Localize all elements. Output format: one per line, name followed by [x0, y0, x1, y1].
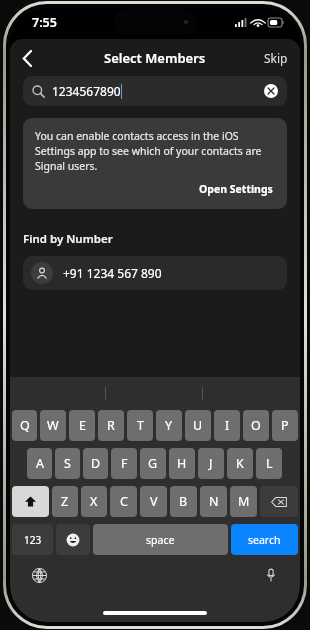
staticText: R: [107, 417, 115, 434]
staticText: Find by Number: [23, 231, 113, 247]
button[interactable]: J: [198, 448, 224, 479]
staticText: S: [64, 455, 71, 472]
button[interactable]: O: [243, 410, 269, 441]
staticText: E: [79, 417, 86, 434]
staticText: T: [137, 417, 144, 434]
button[interactable]: space: [93, 524, 228, 555]
button[interactable]: F: [111, 448, 137, 479]
button[interactable]: 123: [12, 524, 53, 555]
button[interactable]: Emoji: [56, 524, 90, 555]
staticText: M: [238, 493, 250, 510]
button[interactable]: search: [231, 524, 298, 555]
button[interactable]: U: [185, 410, 211, 441]
button[interactable]: D: [83, 448, 108, 479]
button[interactable]: K: [227, 448, 253, 479]
button[interactable]: C: [110, 486, 137, 517]
button[interactable]: +91 1234 567 890: [23, 256, 287, 290]
staticText: Select Members: [104, 49, 206, 67]
staticText: I: [225, 417, 230, 434]
staticText: Y: [165, 417, 173, 434]
staticText: C: [120, 493, 128, 510]
button[interactable]: Dictate: [258, 562, 284, 588]
staticText: W: [47, 417, 59, 434]
staticText: P: [281, 417, 289, 434]
button[interactable]: V: [140, 486, 167, 517]
staticText: N: [209, 493, 219, 510]
staticText: F: [121, 455, 128, 472]
staticText: You can enable contacts access in the iO…: [35, 129, 275, 173]
button[interactable]: Y: [156, 410, 182, 441]
staticText: D: [91, 455, 101, 472]
button[interactable]: Back: [10, 41, 44, 75]
button[interactable]: X: [81, 486, 107, 517]
button[interactable]: W: [40, 410, 66, 441]
button[interactable]: R: [98, 410, 124, 441]
button[interactable]: T: [127, 410, 153, 441]
button[interactable]: Skip: [252, 42, 300, 74]
staticText: H: [177, 455, 187, 472]
staticText: A: [36, 455, 44, 472]
staticText: 1234567890: [52, 83, 121, 99]
staticText: J: [209, 455, 213, 472]
button[interactable]: Change keyboard language: [26, 562, 52, 588]
button[interactable]: Backspace: [260, 486, 298, 517]
button[interactable]: L: [256, 448, 282, 479]
staticText: L: [266, 455, 273, 472]
staticText: B: [179, 493, 188, 510]
staticText: Skip: [264, 50, 288, 66]
staticText: U: [193, 417, 203, 434]
staticText: 7:55: [32, 14, 57, 31]
button[interactable]: 1234567890: [23, 76, 287, 106]
button[interactable]: Q: [12, 410, 37, 441]
button[interactable]: P: [272, 410, 298, 441]
staticText: 123: [24, 533, 42, 547]
button[interactable]: N: [200, 486, 227, 517]
staticText: Q: [20, 417, 30, 434]
button[interactable]: Clear: [264, 84, 278, 98]
button[interactable]: H: [169, 448, 195, 479]
button[interactable]: B: [170, 486, 197, 517]
button[interactable]: A: [27, 448, 52, 479]
button[interactable]: I: [214, 410, 240, 441]
button[interactable]: Shift: [12, 486, 49, 517]
button[interactable]: S: [55, 448, 80, 479]
staticText: Open Settings: [199, 182, 273, 196]
staticText: Z: [61, 493, 69, 510]
button[interactable]: Z: [52, 486, 78, 517]
staticText: V: [150, 493, 158, 510]
staticText: O: [251, 417, 261, 434]
staticText: space: [146, 533, 175, 547]
button[interactable]: M: [230, 486, 257, 517]
staticText: X: [90, 493, 98, 510]
button[interactable]: G: [140, 448, 166, 479]
staticText: +91 1234 567 890: [63, 265, 162, 281]
staticText: G: [148, 455, 158, 472]
staticText: search: [248, 533, 281, 547]
button[interactable]: Open Settings: [197, 180, 275, 198]
staticText: K: [236, 455, 244, 472]
button[interactable]: E: [69, 410, 95, 441]
